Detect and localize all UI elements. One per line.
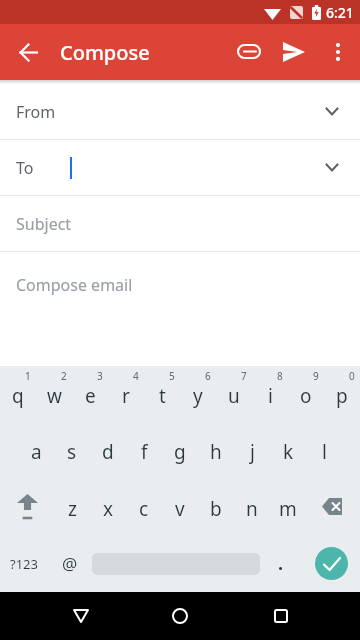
staticText: z <box>68 496 77 522</box>
button[interactable] <box>302 535 360 592</box>
button[interactable] <box>316 28 360 76</box>
button[interactable]: l <box>306 422 342 478</box>
button[interactable]: z <box>54 478 90 535</box>
staticText: 5 <box>169 369 175 383</box>
staticText: w <box>47 383 62 409</box>
staticText: v <box>175 496 185 522</box>
button[interactable]: f <box>126 422 162 478</box>
button[interactable]: @ <box>48 535 92 592</box>
staticText: m <box>279 496 297 522</box>
button[interactable]: To <box>0 140 360 195</box>
button[interactable]: c <box>126 478 162 535</box>
staticText: From <box>16 101 56 123</box>
staticText: . <box>278 551 284 576</box>
staticText: x <box>103 496 114 522</box>
staticText: 7 <box>241 369 247 383</box>
staticText: Compose email <box>16 274 133 296</box>
button[interactable]: ?123 <box>0 535 48 592</box>
button[interactable]: p <box>324 366 360 422</box>
staticText: 3 <box>97 369 103 383</box>
staticText: s <box>67 439 77 465</box>
button[interactable] <box>0 478 54 535</box>
staticText: Compose <box>60 39 150 66</box>
staticText: @ <box>62 552 78 575</box>
staticText: y <box>193 383 203 409</box>
staticText: 0 <box>349 369 355 383</box>
button[interactable]: y <box>180 366 216 422</box>
staticText: 8 <box>277 369 283 383</box>
button[interactable]: a <box>18 422 54 478</box>
button[interactable]: g <box>162 422 198 478</box>
button[interactable]: v <box>162 478 198 535</box>
staticText: g <box>174 439 186 465</box>
button[interactable] <box>57 592 105 640</box>
staticText: h <box>210 439 222 465</box>
button[interactable]: i <box>252 366 288 422</box>
staticText: 9 <box>313 369 319 383</box>
staticText: To <box>16 157 34 179</box>
button[interactable]: t <box>144 366 180 422</box>
staticText: 1 <box>25 369 31 383</box>
staticText: k <box>283 439 294 465</box>
button[interactable]: m <box>270 478 306 535</box>
staticText: 6 <box>205 369 211 383</box>
staticText: n <box>246 496 258 522</box>
button[interactable]: s <box>54 422 90 478</box>
button[interactable]: Subject <box>0 196 360 251</box>
button[interactable]: h <box>198 422 234 478</box>
button[interactable]: e <box>72 366 108 422</box>
button[interactable] <box>228 28 272 76</box>
staticText: q <box>12 383 24 409</box>
staticText: 6:21 <box>326 3 354 22</box>
staticText: i <box>268 383 273 409</box>
button[interactable] <box>92 535 260 592</box>
button[interactable]: n <box>234 478 270 535</box>
button[interactable] <box>306 478 360 535</box>
staticText: r <box>122 383 130 409</box>
staticText: b <box>210 496 222 522</box>
staticText: e <box>85 383 96 409</box>
button[interactable]: w <box>36 366 72 422</box>
button[interactable]: j <box>234 422 270 478</box>
staticText: f <box>141 439 148 465</box>
button[interactable] <box>4 28 52 76</box>
staticText: l <box>322 439 327 465</box>
button[interactable]: k <box>270 422 306 478</box>
staticText: d <box>102 439 114 465</box>
staticText: a <box>31 439 42 465</box>
button[interactable]: d <box>90 422 126 478</box>
staticText: p <box>336 383 348 409</box>
staticText: 2 <box>61 369 67 383</box>
button[interactable]: r <box>108 366 144 422</box>
button[interactable] <box>257 592 305 640</box>
button[interactable]: b <box>198 478 234 535</box>
staticText: Subject <box>16 213 72 235</box>
button[interactable]: q <box>0 366 36 422</box>
staticText: 4 <box>133 369 139 383</box>
staticText: t <box>159 383 166 409</box>
button[interactable]: o <box>288 366 324 422</box>
staticText: u <box>228 383 240 409</box>
button[interactable] <box>156 592 204 640</box>
button[interactable]: x <box>90 478 126 535</box>
staticText: o <box>300 383 312 409</box>
staticText: ?123 <box>10 555 38 573</box>
button[interactable]: From <box>0 84 360 139</box>
button[interactable]: u <box>216 366 252 422</box>
staticText: j <box>250 439 255 465</box>
staticText: c <box>139 496 149 522</box>
button[interactable]: . <box>260 535 302 592</box>
button[interactable] <box>272 28 316 76</box>
